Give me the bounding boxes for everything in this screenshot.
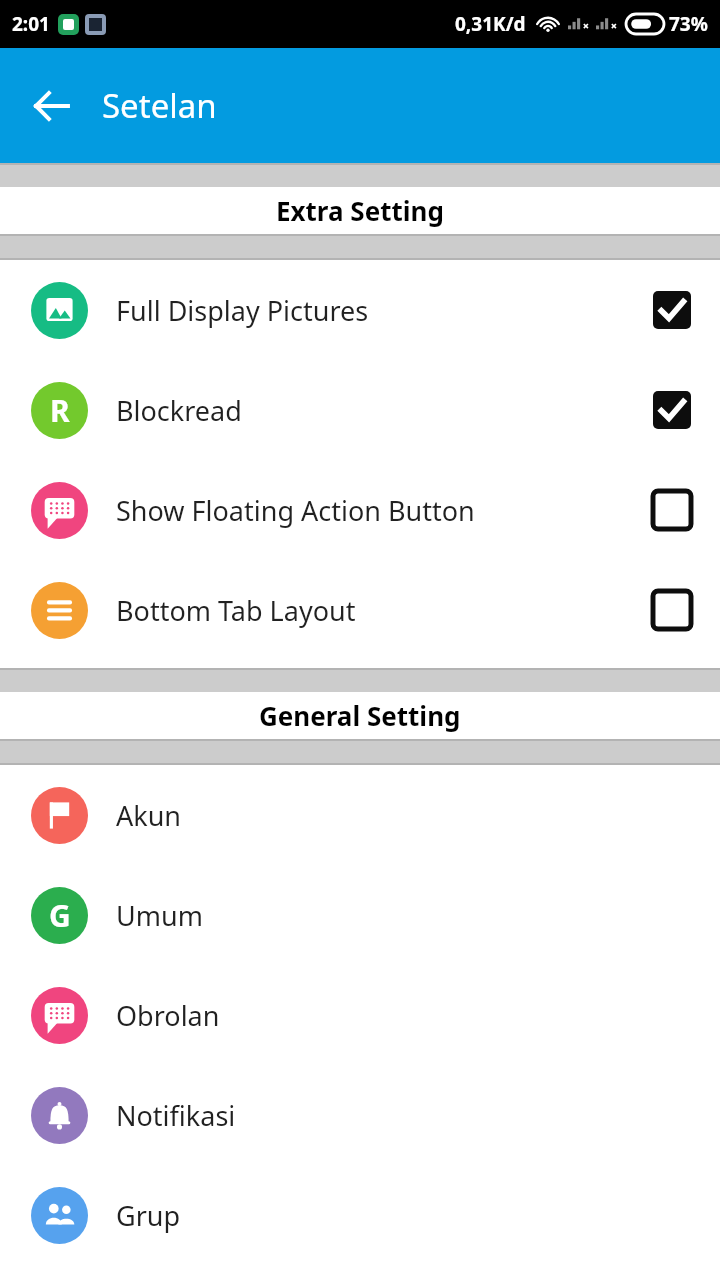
staticText: Obrolan: [116, 997, 220, 1034]
staticText: 2:01: [12, 11, 50, 37]
staticText: G: [49, 895, 71, 936]
staticText: Extra Setting: [276, 193, 444, 228]
staticText: Grup: [116, 1197, 181, 1234]
staticText: 73%: [669, 11, 708, 37]
button[interactable]: Full Display Pictures: [0, 260, 720, 360]
staticText: General Setting: [259, 698, 461, 733]
staticText: 0,31K/d: [455, 11, 526, 37]
button[interactable]: R: [0, 360, 720, 460]
button[interactable]: Back: [22, 77, 80, 135]
button[interactable]: Bottom Tab Layout: [0, 560, 720, 660]
staticText: Akun: [116, 797, 182, 834]
button[interactable]: G: [0, 865, 720, 965]
button[interactable]: Obrolan: [0, 965, 720, 1065]
button[interactable]: Akun: [0, 765, 720, 865]
staticText: Setelan: [102, 83, 217, 128]
staticText: Notifikasi: [116, 1097, 236, 1134]
staticText: Blockread: [116, 392, 242, 429]
button[interactable]: Grup: [0, 1165, 720, 1265]
button[interactable]: Show Floating Action Button: [0, 460, 720, 560]
button[interactable]: Notifikasi: [0, 1065, 720, 1165]
staticText: Show Floating Action Button: [116, 492, 475, 529]
staticText: Umum: [116, 897, 203, 934]
staticText: R: [50, 390, 70, 431]
staticText: Bottom Tab Layout: [116, 592, 356, 629]
staticText: Full Display Pictures: [116, 292, 369, 329]
